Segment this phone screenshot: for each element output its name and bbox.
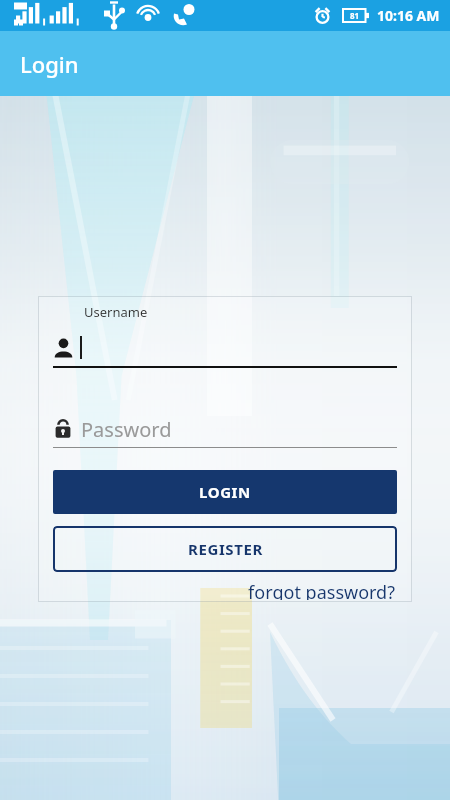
staticText: REGISTER	[188, 539, 263, 559]
staticText: LOGIN	[199, 482, 251, 502]
staticText: Login	[20, 49, 79, 79]
staticText: Username	[84, 303, 148, 321]
button[interactable]: Username	[53, 333, 397, 368]
staticText: 10:16 AM	[377, 6, 440, 25]
staticText: 81	[350, 10, 360, 21]
other: Password	[53, 419, 73, 439]
staticText: Password	[81, 416, 172, 443]
button[interactable]: Password	[53, 414, 397, 448]
other: Username	[53, 337, 74, 358]
button[interactable]: REGISTER	[53, 526, 397, 572]
button[interactable]: LOGIN	[53, 470, 397, 514]
button[interactable]: forgot password?	[246, 578, 397, 602]
